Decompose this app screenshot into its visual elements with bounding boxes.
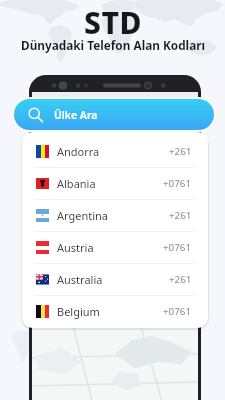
staticText: Andorra: [57, 144, 100, 159]
staticText: Albania: [57, 176, 96, 191]
button[interactable]: Austria: [22, 232, 208, 263]
button[interactable]: Andorra: [22, 136, 208, 167]
staticText: Austria: [57, 240, 94, 255]
staticText: STD: [84, 2, 142, 43]
staticText: Dünyadaki Telefon Alan Kodları: [21, 37, 205, 53]
button[interactable]: Belgium: [22, 296, 208, 327]
staticText: Ülke Ara: [54, 108, 98, 122]
staticText: Argentina: [57, 208, 109, 223]
button[interactable]: Australia: [22, 264, 208, 295]
button[interactable]: Ülke Ara: [14, 99, 214, 130]
staticText: Belgium: [57, 304, 100, 319]
staticText: +261: [169, 273, 192, 286]
staticText: +0761: [163, 305, 192, 318]
staticText: +0761: [163, 241, 192, 254]
staticText: Australia: [57, 272, 103, 287]
staticText: +261: [169, 145, 192, 158]
staticText: +0761: [163, 177, 192, 190]
button[interactable]: Argentina: [22, 200, 208, 231]
staticText: +261: [169, 209, 192, 222]
button[interactable]: Albania: [22, 168, 208, 199]
